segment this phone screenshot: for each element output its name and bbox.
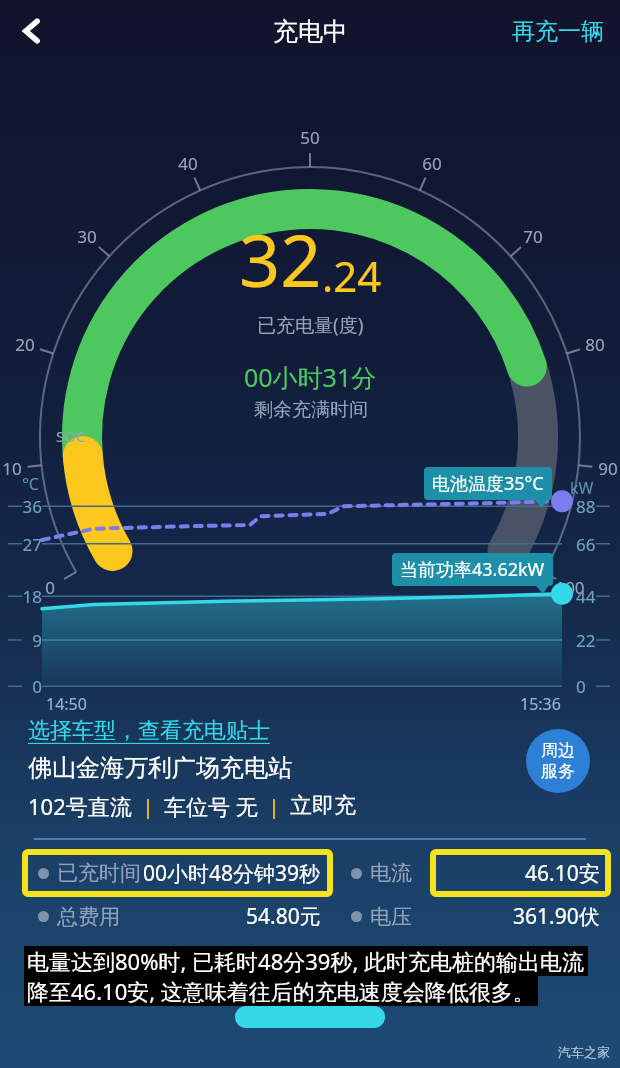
- staticText: 36: [12, 495, 42, 518]
- staticText: 已充电量(度): [257, 312, 364, 338]
- staticText: 15:36: [520, 693, 561, 715]
- staticText: 降至46.10安, 这意味着往后的充电速度会降低很多。: [27, 976, 535, 1006]
- staticText: 0: [12, 675, 42, 698]
- staticText: 90: [592, 457, 620, 480]
- staticText: 剩余充满时间: [254, 398, 368, 422]
- staticText: 佛山金海万利广场充电站: [28, 753, 292, 783]
- staticText: 50: [294, 126, 326, 149]
- staticText: 当前功率43.62kW: [400, 557, 545, 582]
- staticText: 电压: [370, 904, 412, 930]
- staticText: 总费用: [57, 904, 120, 930]
- staticText: 00小时31分: [244, 360, 377, 394]
- staticText: 9: [12, 629, 42, 652]
- staticText: 10: [0, 457, 28, 480]
- staticText: kW: [570, 477, 594, 499]
- staticText: 周边: [541, 740, 575, 761]
- staticText: 电量达到80%时, 已耗时48分39秒, 此时充电桩的输出电流: [27, 946, 585, 976]
- staticText: .24: [322, 247, 382, 304]
- button[interactable]: 再充一辆: [508, 11, 608, 52]
- staticText: 充电中: [273, 16, 348, 47]
- staticText: |: [258, 793, 290, 820]
- staticText: 20: [9, 333, 41, 356]
- staticText: 电流: [370, 860, 412, 886]
- staticText: SOC: [56, 426, 86, 446]
- staticText: 80: [579, 333, 611, 356]
- staticText: 00小时48分钟39秒: [143, 859, 321, 888]
- staticText: 0: [34, 576, 66, 599]
- staticText: 361.90伏: [513, 902, 600, 931]
- staticText: °C: [22, 473, 39, 495]
- staticText: 30: [71, 225, 103, 248]
- staticText: 14:50: [46, 693, 87, 715]
- staticText: 车位号 无: [164, 791, 258, 821]
- staticText: 22: [576, 629, 606, 652]
- staticText: 66: [576, 533, 606, 556]
- staticText: 100: [554, 576, 586, 599]
- staticText: 54.80元: [246, 902, 321, 931]
- staticText: 汽车之家: [558, 1044, 610, 1060]
- staticText: 102号直流: [28, 791, 132, 821]
- staticText: 服务: [541, 761, 575, 782]
- button[interactable]: [235, 1006, 385, 1028]
- staticText: 32: [239, 210, 322, 308]
- staticText: 0: [576, 675, 606, 698]
- staticText: 44: [576, 585, 606, 608]
- button[interactable]: 周边: [526, 729, 590, 793]
- staticText: 46.10安: [525, 859, 600, 888]
- staticText: 18: [12, 585, 42, 608]
- staticText: 40: [172, 152, 204, 175]
- staticText: 60: [416, 152, 448, 175]
- staticText: |: [132, 793, 164, 820]
- staticText: 已充时间: [57, 860, 141, 886]
- staticText: 88: [576, 495, 606, 518]
- button[interactable]: 选择车型，查看充电贴士: [28, 717, 270, 745]
- staticText: 电池温度35°C: [432, 471, 544, 496]
- staticText: 再充一辆: [512, 17, 604, 46]
- button[interactable]: Back: [8, 7, 56, 55]
- staticText: 27: [12, 533, 42, 556]
- staticText: 70: [517, 225, 549, 248]
- staticText: 立即充: [290, 792, 356, 820]
